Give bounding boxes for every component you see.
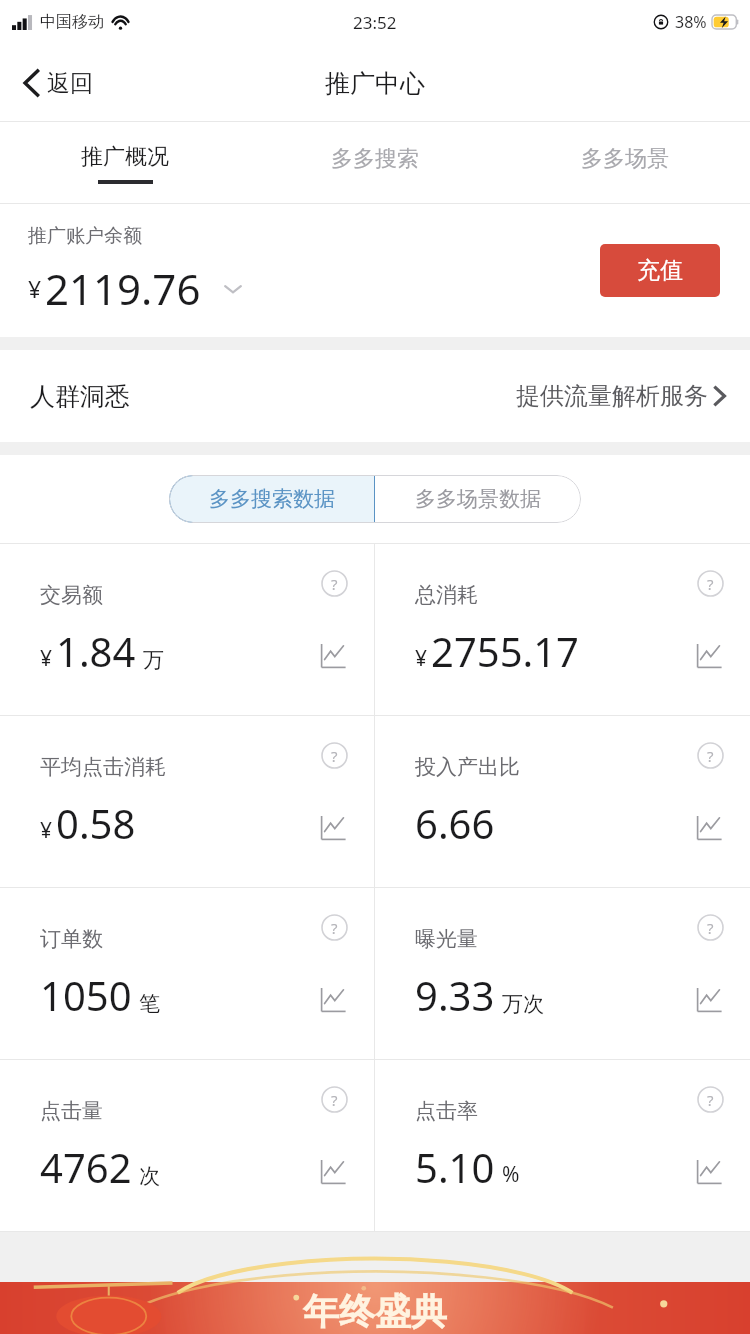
staticText: 1.84 (56, 624, 136, 678)
button[interactable]: 平均点击消耗 (0, 716, 374, 887)
button[interactable]: 趋势图 (694, 813, 724, 843)
staticText: ? (331, 574, 338, 594)
staticText: ? (331, 746, 338, 766)
staticText: 6.66 (415, 796, 495, 850)
staticText: 曝光量 (415, 926, 478, 952)
button[interactable]: 交易额 (0, 544, 374, 715)
button[interactable]: 展开 (219, 275, 247, 303)
staticText: 38% (675, 11, 707, 33)
staticText: 平均点击消耗 (40, 754, 166, 780)
staticText: 多多场景数据 (415, 486, 541, 512)
button[interactable]: 趋势图 (694, 985, 724, 1015)
button[interactable]: 趋势图 (694, 1157, 724, 1187)
button[interactable]: 点击量 (0, 1060, 374, 1231)
button[interactable]: 多多搜索 (250, 122, 500, 204)
staticText: 5.10 (415, 1140, 495, 1194)
staticText: 订单数 (40, 926, 103, 952)
staticText: ? (707, 918, 714, 938)
button[interactable]: 总消耗 (375, 544, 750, 715)
staticText: 推广中心 (325, 68, 425, 99)
staticText: ? (331, 1090, 338, 1110)
staticText: 中国移动 (40, 12, 104, 32)
button[interactable]: 多多场景数据 (375, 475, 581, 523)
button[interactable]: 说明 (321, 914, 348, 941)
staticText: 提供流量解析服务 (516, 381, 708, 411)
button[interactable]: 投入产出比 (375, 716, 750, 887)
staticText: 推广账户余额 (28, 224, 142, 248)
button[interactable]: 曝光量 (375, 888, 750, 1059)
staticText: 推广概况 (81, 143, 169, 171)
button[interactable]: 返回 (0, 60, 111, 106)
button[interactable]: 年终盛典活动 (0, 1282, 750, 1334)
staticText: % (502, 1160, 520, 1189)
button[interactable]: 人群洞悉 (0, 350, 750, 442)
staticText: 总消耗 (415, 582, 478, 608)
button[interactable]: 趋势图 (318, 641, 348, 671)
staticText: ? (707, 1090, 714, 1110)
button[interactable]: 说明 (321, 1086, 348, 1113)
staticText: 次 (139, 1163, 160, 1189)
button[interactable]: 趋势图 (694, 641, 724, 671)
staticText: 投入产出比 (415, 754, 520, 780)
button[interactable]: 趋势图 (318, 1157, 348, 1187)
staticText: ? (707, 746, 714, 766)
button[interactable]: 趋势图 (318, 813, 348, 843)
button[interactable]: 订单数 (0, 888, 374, 1059)
button[interactable]: 说明 (697, 570, 724, 597)
staticText: 笔 (139, 991, 160, 1017)
staticText: 年终盛典 (303, 1289, 447, 1334)
staticText: 2755.17 (431, 624, 579, 678)
staticText: ? (707, 574, 714, 594)
staticText: 2119.76 (45, 260, 201, 317)
staticText: 交易额 (40, 582, 103, 608)
staticText: 充值 (637, 256, 683, 285)
staticText: 多多搜索 (331, 145, 419, 173)
button[interactable]: 趋势图 (318, 985, 348, 1015)
button[interactable]: 说明 (697, 742, 724, 769)
staticText: 万 (143, 647, 164, 673)
staticText: 1050 (40, 968, 132, 1022)
staticText: ¥ (40, 816, 53, 845)
staticText: 9.33 (415, 968, 495, 1022)
button[interactable]: 说明 (697, 914, 724, 941)
button[interactable]: 多多搜索数据 (169, 475, 375, 523)
staticText: ? (331, 918, 338, 938)
staticText: 点击率 (415, 1098, 478, 1124)
staticText: 返回 (47, 69, 93, 98)
staticText: 多多场景 (581, 145, 669, 173)
staticText: 点击量 (40, 1098, 103, 1124)
staticText: 人群洞悉 (30, 381, 130, 412)
staticText: ¥ (28, 273, 42, 304)
button[interactable]: 多多场景 (500, 122, 750, 204)
button[interactable]: 说明 (321, 742, 348, 769)
staticText: 0.58 (56, 796, 136, 850)
staticText: ¥ (415, 644, 428, 673)
button[interactable]: 点击率 (375, 1060, 750, 1231)
button[interactable]: 说明 (321, 570, 348, 597)
staticText: 多多搜索数据 (209, 486, 335, 512)
staticText: 23:52 (353, 11, 397, 34)
staticText: 4762 (40, 1140, 132, 1194)
button[interactable]: 说明 (697, 1086, 724, 1113)
staticText: 万次 (502, 991, 544, 1017)
button[interactable]: 推广概况 (0, 122, 250, 204)
button[interactable]: 充值 (600, 244, 720, 297)
staticText: ¥ (40, 644, 53, 673)
